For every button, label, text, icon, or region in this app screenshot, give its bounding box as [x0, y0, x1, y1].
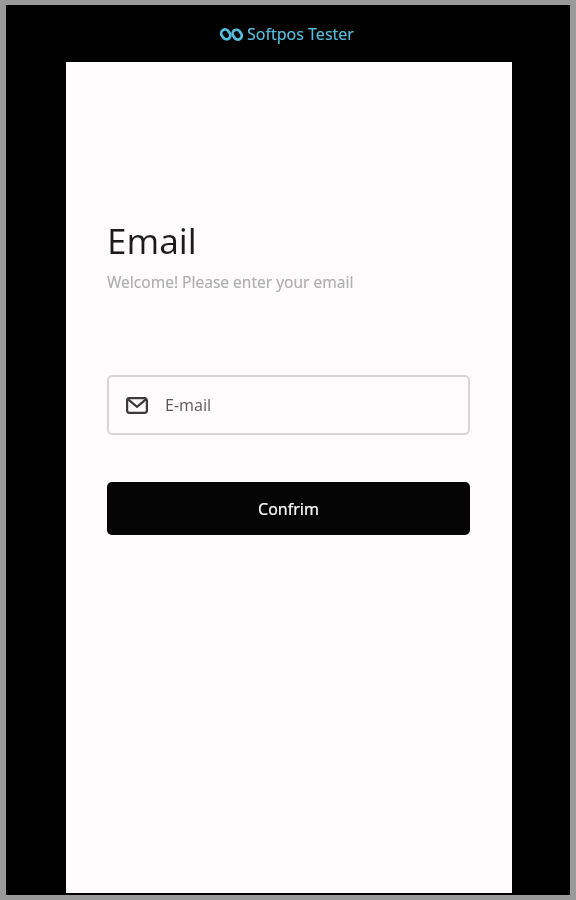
button[interactable]: E-mail: [107, 375, 470, 435]
staticText: Softpos Tester: [247, 23, 354, 45]
staticText: E-mail: [165, 394, 212, 416]
button[interactable]: Confrim: [107, 482, 470, 535]
staticText: Email: [107, 217, 197, 265]
staticText: Confrim: [258, 498, 319, 520]
staticText: Welcome! Please enter your email: [107, 271, 354, 292]
other: Link: [223, 26, 240, 43]
